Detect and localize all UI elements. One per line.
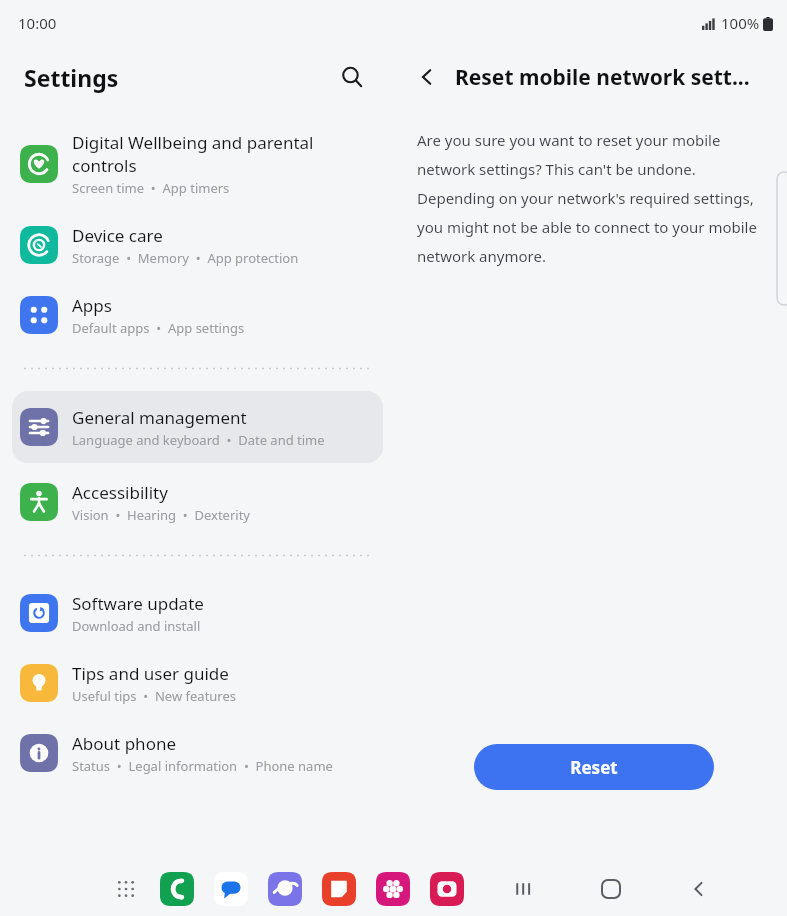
staticText: Vision • Hearing • Dexterity (72, 506, 250, 524)
button[interactable]: Reset (474, 744, 714, 790)
staticText: Download and install (72, 617, 201, 635)
staticText: About phone (72, 732, 177, 755)
button[interactable]: Apps (12, 280, 383, 350)
staticText: Reset (570, 756, 618, 779)
staticText: Digital Wellbeing and parental controls (72, 131, 314, 177)
staticText: Are you sure you want to reset your mobi… (417, 130, 761, 266)
staticText: 10:00 (18, 13, 57, 33)
staticText: Device care (72, 224, 163, 247)
button[interactable]: Back (407, 57, 447, 97)
button[interactable]: Device care (12, 210, 383, 280)
button[interactable]: Software update (12, 578, 383, 648)
button[interactable]: Accessibility (12, 467, 383, 537)
button[interactable]: Search (333, 58, 371, 96)
staticText: Tips and user guide (72, 662, 229, 685)
button[interactable]: App (160, 872, 194, 906)
staticText: Useful tips • New features (72, 687, 237, 705)
staticText: Storage • Memory • App protection (72, 249, 299, 267)
button[interactable]: App (430, 872, 464, 906)
button[interactable]: Digital Wellbeing and parental controls (12, 118, 383, 210)
staticText: Default apps • App settings (72, 319, 245, 337)
button[interactable]: App (268, 872, 302, 906)
button[interactable]: General management (12, 391, 383, 463)
staticText: Apps (72, 294, 112, 317)
staticText: Accessibility (72, 481, 168, 504)
staticText: Software update (72, 592, 204, 615)
staticText: Status • Legal information • Phone name (72, 757, 333, 775)
button[interactable]: Recent apps (505, 871, 541, 907)
button[interactable]: Back (681, 871, 717, 907)
staticText: General management (72, 406, 247, 429)
button[interactable]: App (376, 872, 410, 906)
staticText: Reset mobile network sett... (455, 63, 750, 92)
button[interactable]: App (214, 872, 248, 906)
button[interactable]: Apps list (112, 875, 140, 903)
staticText: 100% (721, 13, 760, 33)
button[interactable]: Home (593, 871, 629, 907)
staticText: Screen time • App timers (72, 179, 230, 197)
button[interactable]: App (322, 872, 356, 906)
button[interactable]: About phone (12, 718, 383, 788)
staticText: Language and keyboard • Date and time (72, 431, 325, 449)
button[interactable]: Tips and user guide (12, 648, 383, 718)
staticText: Settings (24, 62, 119, 93)
